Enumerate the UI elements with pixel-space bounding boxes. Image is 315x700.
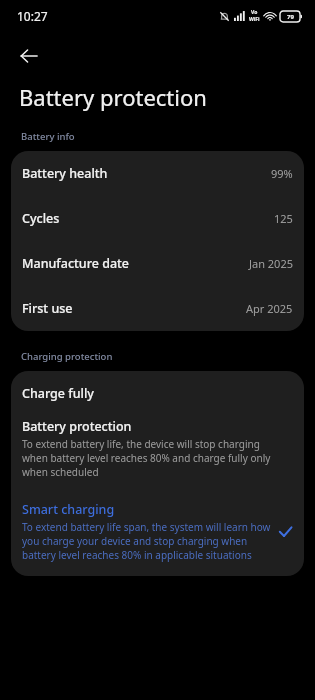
staticText: Apr 2025 <box>246 301 293 316</box>
button[interactable]: Back <box>11 38 47 74</box>
staticText: Battery info <box>21 130 75 143</box>
staticText: Charge fully <box>22 385 94 402</box>
staticText: To extend battery life, the device will … <box>22 437 271 479</box>
staticText: Charging protection <box>21 350 113 363</box>
staticText: First use <box>22 300 73 317</box>
staticText: Battery protection <box>22 418 132 435</box>
button[interactable]: Manufacture date <box>11 241 304 286</box>
button[interactable]: Cycles <box>11 196 304 241</box>
staticText: Smart charging <box>22 501 115 518</box>
button[interactable]: Battery health <box>11 151 304 196</box>
staticText: To extend battery life span, the system … <box>22 520 271 562</box>
staticText: Battery protection <box>19 82 207 112</box>
button[interactable]: First use <box>11 286 304 331</box>
staticText: Manufacture date <box>22 255 130 272</box>
staticText: Battery health <box>22 165 108 182</box>
button[interactable]: Battery protection <box>11 416 304 491</box>
button[interactable]: Smart charging <box>11 491 304 576</box>
staticText: Vo <box>251 9 258 16</box>
staticText: WiFi <box>249 16 260 23</box>
button[interactable]: Charge fully <box>11 371 304 416</box>
staticText: 125 <box>274 211 293 226</box>
staticText: 99% <box>271 166 293 181</box>
staticText: 10:27 <box>17 8 48 24</box>
staticText: Cycles <box>22 210 60 227</box>
staticText: Jan 2025 <box>249 256 293 271</box>
staticText: 79 <box>287 13 294 21</box>
